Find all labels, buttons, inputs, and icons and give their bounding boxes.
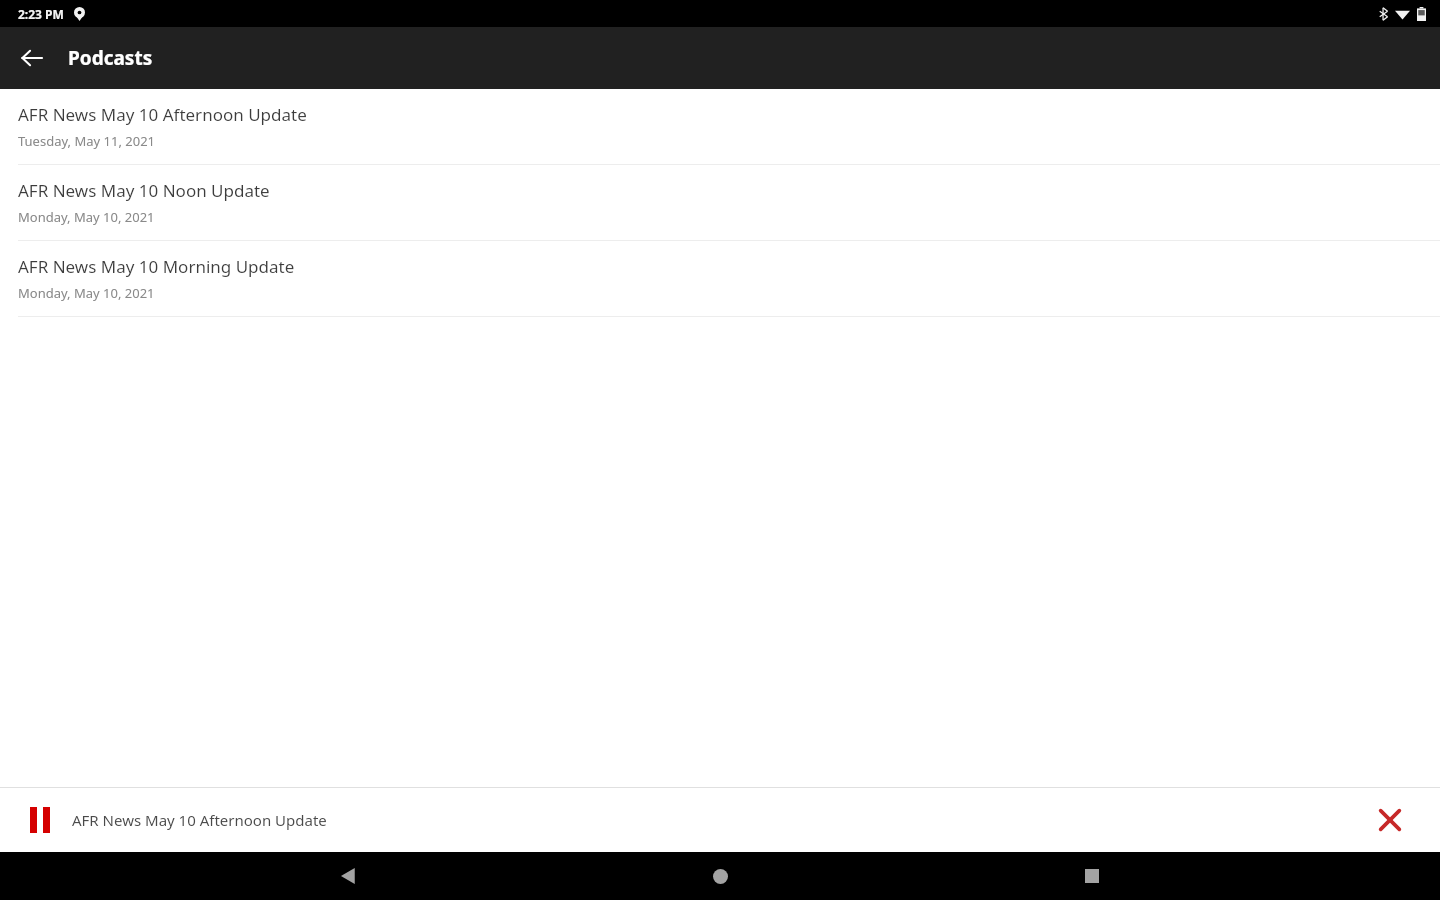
button[interactable]: Close player <box>1370 800 1410 840</box>
button[interactable]: AFR News May 10 Noon Update <box>0 165 1440 241</box>
staticText: Monday, May 10, 2021 <box>18 208 155 226</box>
button[interactable]: Pause <box>20 800 60 840</box>
staticText: AFR News May 10 Morning Update <box>18 255 295 278</box>
staticText: Tuesday, May 11, 2021 <box>18 132 156 150</box>
button[interactable]: Navigate up <box>8 34 56 82</box>
button[interactable]: AFR News May 10 Afternoon Update <box>0 89 1440 165</box>
staticText: Monday, May 10, 2021 <box>18 284 155 302</box>
button[interactable]: AFR News May 10 Morning Update <box>0 241 1440 317</box>
staticText: AFR News May 10 Noon Update <box>18 179 270 202</box>
staticText: 2:23 PM <box>18 6 64 22</box>
staticText: AFR News May 10 Afternoon Update <box>18 103 307 126</box>
button[interactable]: Home <box>696 852 744 900</box>
button[interactable]: Recent apps <box>1068 852 1116 900</box>
staticText: AFR News May 10 Afternoon Update <box>72 810 327 830</box>
staticText: Podcasts <box>68 45 153 71</box>
button[interactable]: Back <box>324 852 372 900</box>
